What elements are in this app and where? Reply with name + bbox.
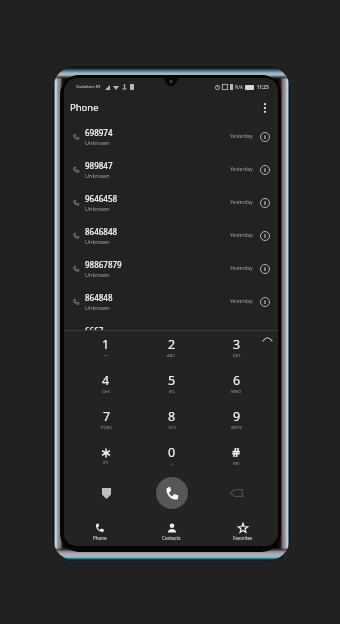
staticText: (P) [103, 460, 109, 466]
staticText: Yesterday [230, 133, 253, 140]
staticText: 989847 [85, 160, 113, 171]
button[interactable]: 9 [204, 404, 269, 440]
button[interactable]: 0 [139, 440, 204, 476]
staticText: Phone [93, 535, 107, 541]
staticText: DEF [233, 353, 241, 359]
staticText: (W) [233, 461, 240, 467]
staticText: TUV [168, 425, 176, 431]
staticText: PQRS [101, 425, 112, 431]
button[interactable]: 5 [139, 368, 204, 404]
button[interactable]: 98867879 [64, 252, 278, 285]
button[interactable]: 7 [73, 404, 139, 440]
staticText: WXYZ [231, 425, 243, 431]
button[interactable]: (P) [73, 440, 139, 476]
button[interactable]: Call details [257, 129, 273, 145]
staticText: 6667 [85, 325, 104, 336]
staticText: Unknown [85, 205, 110, 212]
staticText: 864848 [85, 292, 113, 303]
button[interactable]: 6 [204, 368, 269, 404]
button[interactable]: Call [139, 474, 204, 512]
button[interactable]: Backspace [204, 474, 269, 512]
staticText: 11:23 [257, 84, 269, 90]
staticText: 2 [168, 336, 176, 353]
staticText: + [171, 461, 174, 467]
button[interactable]: # [204, 440, 269, 476]
staticText: •• [104, 353, 108, 359]
staticText: 98867879 [85, 259, 122, 270]
button[interactable]: 2 [139, 332, 204, 368]
button[interactable]: Hide dialpad [260, 331, 274, 345]
button[interactable]: More options [255, 98, 275, 118]
staticText: Yesterday [230, 232, 253, 239]
button[interactable]: Favorites tab [207, 518, 278, 546]
staticText: Unknown [85, 139, 110, 146]
button[interactable]: Voicemail [73, 474, 139, 512]
button[interactable]: Call details [257, 261, 273, 277]
staticText: Yesterday [230, 298, 253, 305]
button[interactable]: 4 [73, 368, 139, 404]
staticText: N/A [235, 84, 243, 90]
staticText: 3 [233, 336, 241, 353]
button[interactable]: 989847 [64, 153, 278, 186]
staticText: Unknown [85, 238, 110, 245]
staticText: 9646458 [85, 193, 118, 204]
button[interactable]: Phone tab [64, 518, 136, 546]
staticText: # [232, 444, 241, 461]
button[interactable]: 6667 [64, 318, 278, 351]
staticText: Phone [70, 101, 99, 114]
staticText: Yesterday [230, 199, 253, 206]
staticText: GHI [102, 389, 110, 395]
staticText: Unknown [85, 271, 110, 278]
staticText: Contacts [162, 535, 181, 541]
button[interactable]: Call details [257, 162, 273, 178]
staticText: JKL [169, 389, 175, 395]
staticText: ABC [167, 353, 176, 359]
staticText: 4 [102, 372, 110, 389]
staticText: 0 [168, 444, 176, 461]
button[interactable]: Call details [257, 195, 273, 211]
button[interactable]: 9646458 [64, 186, 278, 219]
staticText: 8 [168, 408, 176, 425]
button[interactable]: Call details [257, 228, 273, 244]
staticText: Unknown [85, 172, 110, 179]
staticText: 5 [168, 372, 176, 389]
staticText: 698974 [85, 127, 113, 138]
staticText: 8646848 [85, 226, 118, 237]
button[interactable]: 8646848 [64, 219, 278, 252]
button[interactable]: Call details [257, 294, 273, 310]
staticText: 1 [102, 336, 110, 353]
staticText: Unknown [85, 337, 110, 344]
button[interactable]: Contacts tab [136, 518, 207, 546]
staticText: Favorites [233, 535, 253, 541]
staticText: Unknown [85, 304, 110, 311]
staticText: Vodafone IN [76, 84, 101, 90]
button[interactable]: 1 [73, 332, 139, 368]
staticText: MNO [231, 389, 242, 395]
button[interactable]: 8 [139, 404, 204, 440]
button[interactable]: 3 [204, 332, 269, 368]
staticText: 6 [233, 372, 241, 389]
staticText: Yesterday [230, 166, 253, 173]
button[interactable]: 864848 [64, 285, 278, 318]
staticText: 9 [233, 408, 241, 425]
button[interactable]: 698974 [64, 120, 278, 153]
button[interactable]: Call details [257, 327, 273, 343]
staticText: Yesterday [230, 265, 253, 272]
staticText: 7 [103, 408, 111, 425]
